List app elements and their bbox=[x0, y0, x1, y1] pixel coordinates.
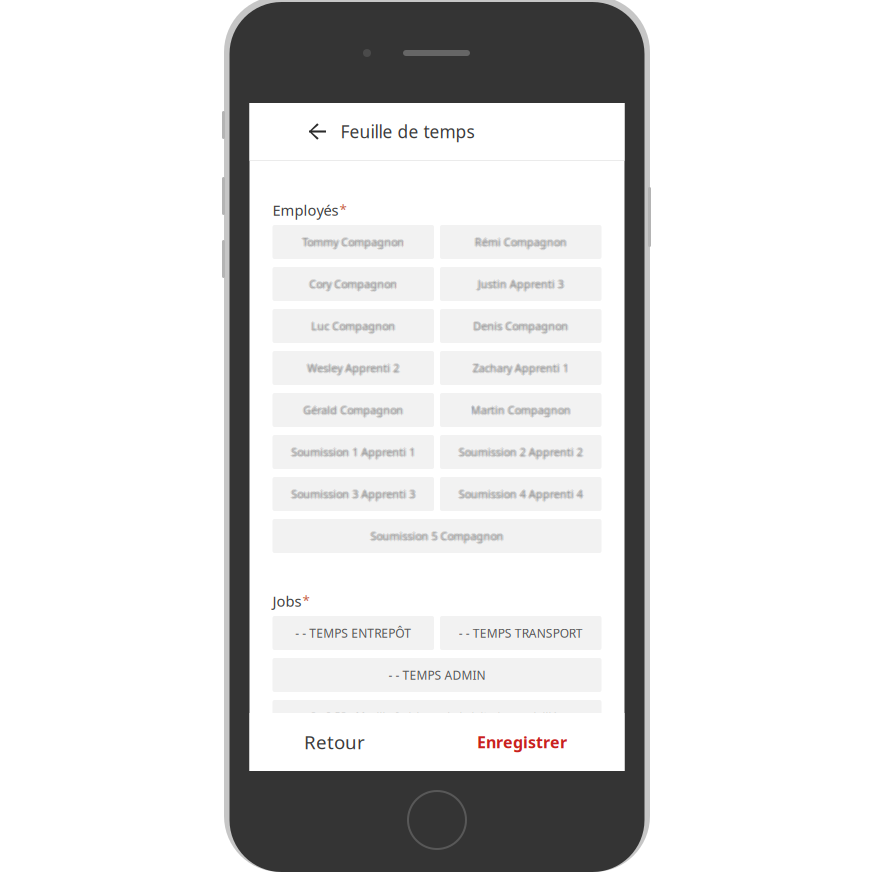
staticText: 9 - 0-58 - Maville fraicheur de la laite… bbox=[310, 710, 563, 724]
staticText: Rémi Compagnon bbox=[474, 235, 566, 249]
staticText: Rémi Compagnon bbox=[475, 234, 567, 248]
button[interactable]: Luc Compagnon bbox=[272, 309, 434, 343]
staticText: Soumission 3 Apprenti 3 bbox=[291, 488, 415, 502]
staticText: Martin Compagnon bbox=[470, 403, 570, 417]
staticText: Rémi Compagnon bbox=[476, 235, 568, 249]
staticText: Rémi Compagnon bbox=[475, 236, 567, 250]
staticText: Wesley Apprenti 2 bbox=[307, 361, 399, 375]
staticText: Soumission 1 Apprenti 1 bbox=[291, 446, 415, 460]
staticText: Tommy Compagnon bbox=[302, 235, 404, 249]
staticText: Cory Compagnon bbox=[308, 277, 396, 291]
staticText: Soumission 4 Apprenti 4 bbox=[458, 487, 582, 501]
staticText: Cory Compagnon bbox=[310, 277, 398, 291]
staticText: Zachary Apprenti 1 bbox=[473, 361, 569, 375]
staticText: Soumission 2 Apprenti 2 bbox=[459, 446, 583, 460]
staticText: 9 - 0-58 - Maville fraicheur de la laite… bbox=[310, 711, 563, 725]
staticText: Wesley Apprenti 2 bbox=[308, 361, 400, 375]
staticText: Soumission 2 Apprenti 2 bbox=[459, 445, 583, 459]
staticText: Justin Apprenti 3 bbox=[477, 277, 563, 291]
staticText: 9 - 0-58 - Maville fraicheur de la laite… bbox=[312, 710, 565, 724]
button[interactable]: Soumission 2 Apprenti 2 bbox=[440, 435, 601, 469]
staticText: Soumission 2 Apprenti 2 bbox=[458, 445, 582, 459]
staticText: Soumission 3 Apprenti 3 bbox=[292, 487, 416, 501]
staticText: Denis Compagnon bbox=[473, 319, 568, 333]
button[interactable]: 9 - 0-58 - Maville fraicheur de la laite… bbox=[272, 700, 601, 734]
button[interactable]: Denis Compagnon bbox=[440, 309, 601, 343]
staticText: Martin Compagnon bbox=[472, 403, 572, 417]
staticText: Soumission 1 Apprenti 1 bbox=[292, 445, 416, 459]
button[interactable]: - - TEMPS ENTREPÔT bbox=[272, 616, 434, 650]
staticText: Zachary Apprenti 1 bbox=[473, 362, 569, 376]
staticText: Cory Compagnon bbox=[309, 276, 397, 290]
button[interactable]: Martin Compagnon bbox=[440, 393, 601, 427]
button[interactable]: - - TEMPS TRANSPORT bbox=[440, 616, 601, 650]
button[interactable]: Rémi Compagnon bbox=[440, 225, 601, 259]
staticText: Soumission 3 Apprenti 3 bbox=[291, 486, 415, 500]
staticText: Denis Compagnon bbox=[472, 319, 567, 333]
staticText: Cory Compagnon bbox=[309, 278, 397, 292]
button[interactable]: Retour bbox=[294, 103, 340, 160]
staticText: Denis Compagnon bbox=[474, 319, 569, 333]
button[interactable]: - - TEMPS ADMIN bbox=[272, 658, 601, 692]
staticText: Soumission 2 Apprenti 2 bbox=[459, 444, 583, 458]
staticText: Tommy Compagnon bbox=[302, 236, 404, 250]
button[interactable]: Enregistrer bbox=[419, 714, 624, 769]
staticText: Soumission 4 Apprenti 4 bbox=[459, 487, 583, 501]
staticText: Soumission 4 Apprenti 4 bbox=[460, 487, 584, 501]
staticText: Justin Apprenti 3 bbox=[478, 278, 564, 292]
staticText: Soumission 3 Apprenti 3 bbox=[291, 487, 415, 501]
staticText: Soumission 3 Apprenti 3 bbox=[290, 487, 414, 501]
staticText: Soumission 5 Compagnon bbox=[372, 529, 505, 543]
button[interactable]: Retour bbox=[249, 714, 419, 769]
staticText: Zachary Apprenti 1 bbox=[472, 361, 568, 375]
staticText: Enregistrer bbox=[477, 731, 567, 753]
staticText: Soumission 5 Compagnon bbox=[369, 529, 502, 543]
button[interactable]: Soumission 1 Apprenti 1 bbox=[272, 435, 434, 469]
staticText: Martin Compagnon bbox=[471, 404, 571, 418]
staticText: Gérald Compagnon bbox=[303, 404, 403, 418]
button[interactable]: Gérald Compagnon bbox=[272, 393, 434, 427]
button[interactable]: Justin Apprenti 3 bbox=[440, 267, 601, 301]
staticText: Justin Apprenti 3 bbox=[478, 276, 564, 290]
button[interactable]: Soumission 5 Compagnon bbox=[272, 519, 601, 553]
button[interactable]: Cory Compagnon bbox=[272, 267, 434, 301]
staticText: Zachary Apprenti 1 bbox=[474, 361, 570, 375]
button[interactable]: Soumission 4 Apprenti 4 bbox=[440, 477, 601, 511]
staticText: Gérald Compagnon bbox=[303, 402, 403, 416]
staticText: Soumission 1 Apprenti 1 bbox=[291, 445, 415, 459]
staticText: Wesley Apprenti 2 bbox=[307, 360, 399, 374]
button[interactable]: Tommy Compagnon bbox=[272, 225, 434, 259]
staticText: 9 - 0-59 - Autre projet ensoleillé bbox=[358, 751, 515, 765]
staticText: Justin Apprenti 3 bbox=[479, 277, 565, 291]
staticText: Gérald Compagnon bbox=[303, 403, 403, 417]
staticText: Soumission 5 Compagnon bbox=[370, 529, 503, 543]
staticText: Zachary Apprenti 1 bbox=[473, 360, 569, 374]
staticText: Luc Compagnon bbox=[311, 319, 395, 333]
staticText: Soumission 4 Apprenti 4 bbox=[459, 486, 583, 500]
button[interactable]: Wesley Apprenti 2 bbox=[272, 351, 434, 385]
button[interactable]: 9 - 0-59 - Autre projet ensoleillé bbox=[272, 742, 601, 776]
staticText: Denis Compagnon bbox=[473, 318, 568, 332]
staticText: Retour bbox=[304, 730, 365, 754]
staticText: - - TEMPS ADMIN bbox=[388, 667, 485, 683]
staticText: Justin Apprenti 3 bbox=[478, 277, 564, 291]
staticText: Soumission 1 Apprenti 1 bbox=[290, 445, 414, 459]
staticText: Soumission 5 Compagnon bbox=[370, 528, 503, 542]
staticText: Tommy Compagnon bbox=[303, 235, 405, 249]
staticText: * bbox=[339, 200, 346, 218]
staticText: Jobs bbox=[272, 591, 301, 611]
staticText: 9 - 0-58 - Maville fraicheur de la laite… bbox=[309, 710, 562, 724]
staticText: Soumission 1 Apprenti 1 bbox=[291, 444, 415, 458]
staticText: Soumission 2 Apprenti 2 bbox=[460, 445, 584, 459]
staticText: Cory Compagnon bbox=[309, 277, 397, 291]
staticText: Wesley Apprenti 2 bbox=[307, 362, 399, 376]
button[interactable]: Soumission 3 Apprenti 3 bbox=[272, 477, 434, 511]
staticText: - - TEMPS ENTREPÔT bbox=[295, 625, 411, 641]
staticText: - - TEMPS TRANSPORT bbox=[459, 625, 583, 641]
staticText: Soumission 4 Apprenti 4 bbox=[459, 488, 583, 502]
button[interactable]: Zachary Apprenti 1 bbox=[440, 351, 601, 385]
